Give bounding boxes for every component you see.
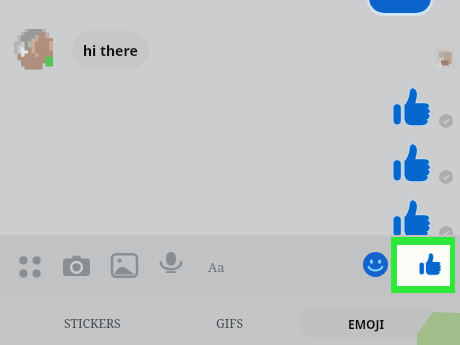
button[interactable]: Emoji [363, 252, 388, 277]
button[interactable]: GIFS [190, 300, 270, 345]
button[interactable]: Camera [63, 253, 90, 280]
staticText: EMOJI [348, 316, 385, 332]
staticText: hi there [83, 41, 138, 60]
button[interactable]: Photos [112, 253, 137, 278]
button[interactable]: Aa [192, 244, 360, 289]
button[interactable]: hi there [72, 31, 149, 69]
button[interactable]: More [19, 256, 41, 278]
button[interactable]: Voice message [160, 252, 182, 274]
button[interactable]: Send like [397, 245, 450, 286]
button[interactable]: STICKERS [32, 300, 152, 345]
staticText: GIFS [216, 315, 244, 331]
staticText: STICKERS [64, 315, 121, 331]
staticText: Aa [208, 258, 225, 276]
button[interactable]: EMOJI [299, 308, 440, 338]
